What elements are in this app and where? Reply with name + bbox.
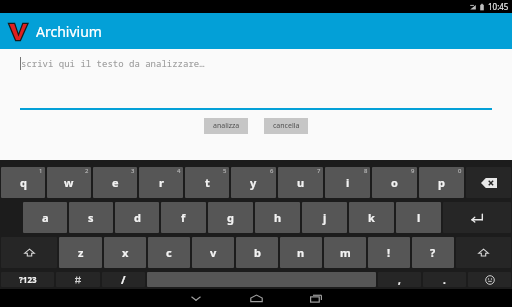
button[interactable]: l (396, 202, 441, 233)
staticText: j (323, 210, 327, 225)
staticText: m (340, 245, 351, 260)
button[interactable]: u (278, 167, 323, 198)
button[interactable]: Home (236, 289, 276, 307)
staticText: 1 (39, 167, 43, 175)
staticText: w (64, 175, 74, 190)
button[interactable]: d (115, 202, 159, 233)
staticText: v (210, 245, 217, 260)
button[interactable]: n (280, 237, 322, 268)
staticText: b (254, 245, 261, 260)
staticText: d (134, 210, 141, 225)
staticText: 3 (131, 167, 135, 175)
staticText: i (346, 175, 350, 190)
button[interactable]: e (93, 167, 137, 198)
button[interactable]: p (419, 167, 464, 198)
button[interactable]: t (185, 167, 229, 198)
button[interactable]: f (161, 202, 206, 233)
button[interactable]: ?123 (1, 272, 54, 287)
staticText: x (122, 245, 129, 260)
button[interactable]: s (69, 202, 113, 233)
button[interactable]: ! (368, 237, 410, 268)
button[interactable]: x (104, 237, 146, 268)
staticText: 8 (364, 167, 368, 175)
staticText: n (297, 245, 305, 260)
button[interactable]: Emoji (468, 272, 511, 287)
button[interactable]: / (102, 272, 145, 287)
button[interactable]: i (325, 167, 370, 198)
button[interactable]: Backspace (466, 167, 511, 198)
button[interactable]: Shift (1, 237, 57, 268)
staticText: 6 (270, 167, 274, 175)
staticText: r (159, 175, 164, 190)
staticText: Archivium (36, 22, 102, 41)
staticText: , (398, 273, 401, 287)
button[interactable]: r (139, 167, 183, 198)
staticText: o (391, 175, 398, 190)
button[interactable]: cancella (264, 118, 308, 134)
button[interactable]: o (372, 167, 417, 198)
button[interactable]: c (148, 237, 190, 268)
button[interactable]: Hide keyboard (176, 289, 216, 307)
staticText: k (368, 210, 375, 225)
button[interactable]: ? (412, 237, 454, 268)
staticText: z (78, 245, 84, 260)
staticText: 0 (458, 167, 462, 175)
button[interactable]: . (423, 272, 466, 287)
staticText: c (166, 245, 172, 260)
staticText: analizza (213, 121, 240, 131)
staticText: 4 (177, 167, 181, 175)
staticText: ?123 (19, 274, 37, 285)
staticText: 9 (411, 167, 415, 175)
button[interactable]: Enter (443, 202, 511, 233)
button[interactable]: a (23, 202, 67, 233)
staticText: q (20, 175, 27, 190)
button[interactable]: Shift (456, 237, 511, 268)
button[interactable]: scrivi qui il testo da analizzare… (20, 57, 492, 87)
button[interactable]: k (349, 202, 394, 233)
button[interactable]: q (1, 167, 45, 198)
staticText: e (112, 175, 119, 190)
staticText: 10:45 (488, 1, 509, 12)
button[interactable]: y (231, 167, 276, 198)
button[interactable]: w (47, 167, 91, 198)
button[interactable]: Recent apps (296, 289, 336, 307)
staticText: p (438, 175, 445, 190)
staticText: ? (430, 245, 436, 260)
staticText: 7 (317, 167, 321, 175)
staticText: t (205, 175, 210, 190)
staticText: f (181, 210, 186, 225)
staticText: / (121, 272, 126, 287)
staticText: . (443, 273, 446, 287)
button[interactable]: j (302, 202, 347, 233)
button[interactable]: , (378, 272, 421, 287)
button[interactable]: Input method (56, 272, 100, 287)
staticText: a (42, 210, 49, 225)
staticText: ! (387, 245, 391, 260)
staticText: scrivi qui il testo da analizzare… (21, 57, 205, 69)
staticText: cancella (273, 121, 300, 131)
staticText: s (88, 210, 94, 225)
staticText: h (274, 210, 282, 225)
staticText: g (227, 210, 234, 225)
staticText: y (250, 175, 257, 190)
button[interactable]: g (208, 202, 253, 233)
button[interactable]: v (192, 237, 234, 268)
staticText: l (417, 210, 421, 225)
button[interactable]: m (324, 237, 366, 268)
button[interactable]: z (59, 237, 102, 268)
staticText: 2 (85, 167, 89, 175)
staticText: u (297, 175, 305, 190)
button[interactable]: b (236, 237, 278, 268)
button[interactable]: h (255, 202, 300, 233)
staticText: 5 (223, 167, 227, 175)
button[interactable]: analizza (204, 118, 248, 134)
